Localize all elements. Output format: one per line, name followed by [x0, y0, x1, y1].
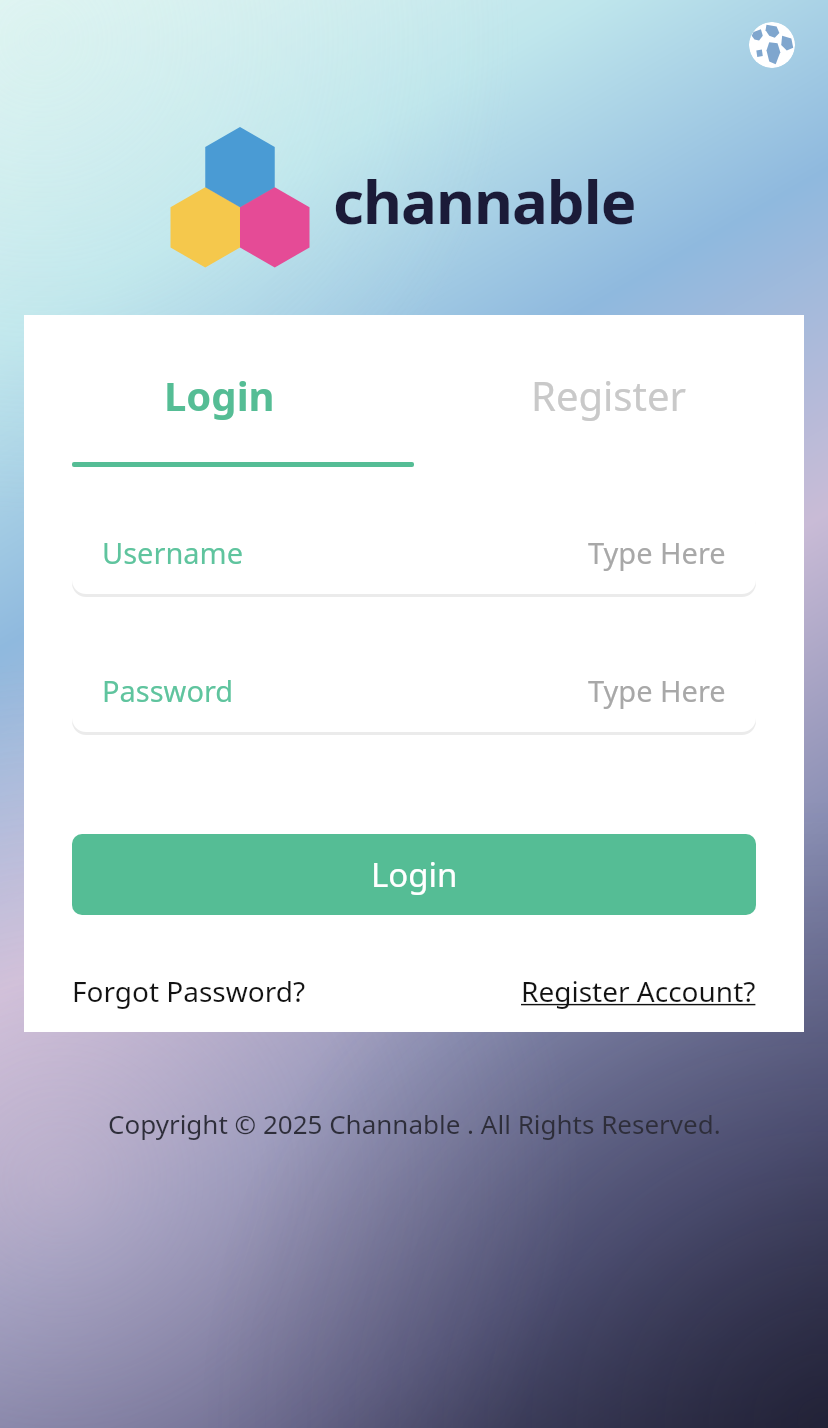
staticText: channable	[333, 160, 636, 242]
staticText: Forgot Password?	[72, 972, 306, 1010]
staticText: Login	[371, 852, 458, 897]
staticText: Copyright © 2025 Channable . All Rights …	[108, 1106, 721, 1141]
staticText: Register	[531, 368, 687, 422]
button[interactable]: Change language	[748, 21, 796, 69]
staticText: Type Here	[588, 671, 726, 710]
staticText: Login	[164, 368, 275, 422]
staticText: Type Here	[588, 533, 726, 572]
button[interactable]: Login	[72, 834, 756, 915]
staticText: Register Account?	[521, 972, 756, 1010]
staticText: Password	[102, 671, 234, 710]
button[interactable]: Register	[414, 363, 804, 427]
button[interactable]: Username	[72, 510, 756, 594]
button[interactable]: Password	[72, 648, 756, 732]
button[interactable]: Login	[24, 363, 414, 427]
button[interactable]: Register Account?	[513, 966, 764, 1016]
button[interactable]: Forgot Password?	[64, 966, 314, 1016]
staticText: Username	[102, 533, 244, 572]
